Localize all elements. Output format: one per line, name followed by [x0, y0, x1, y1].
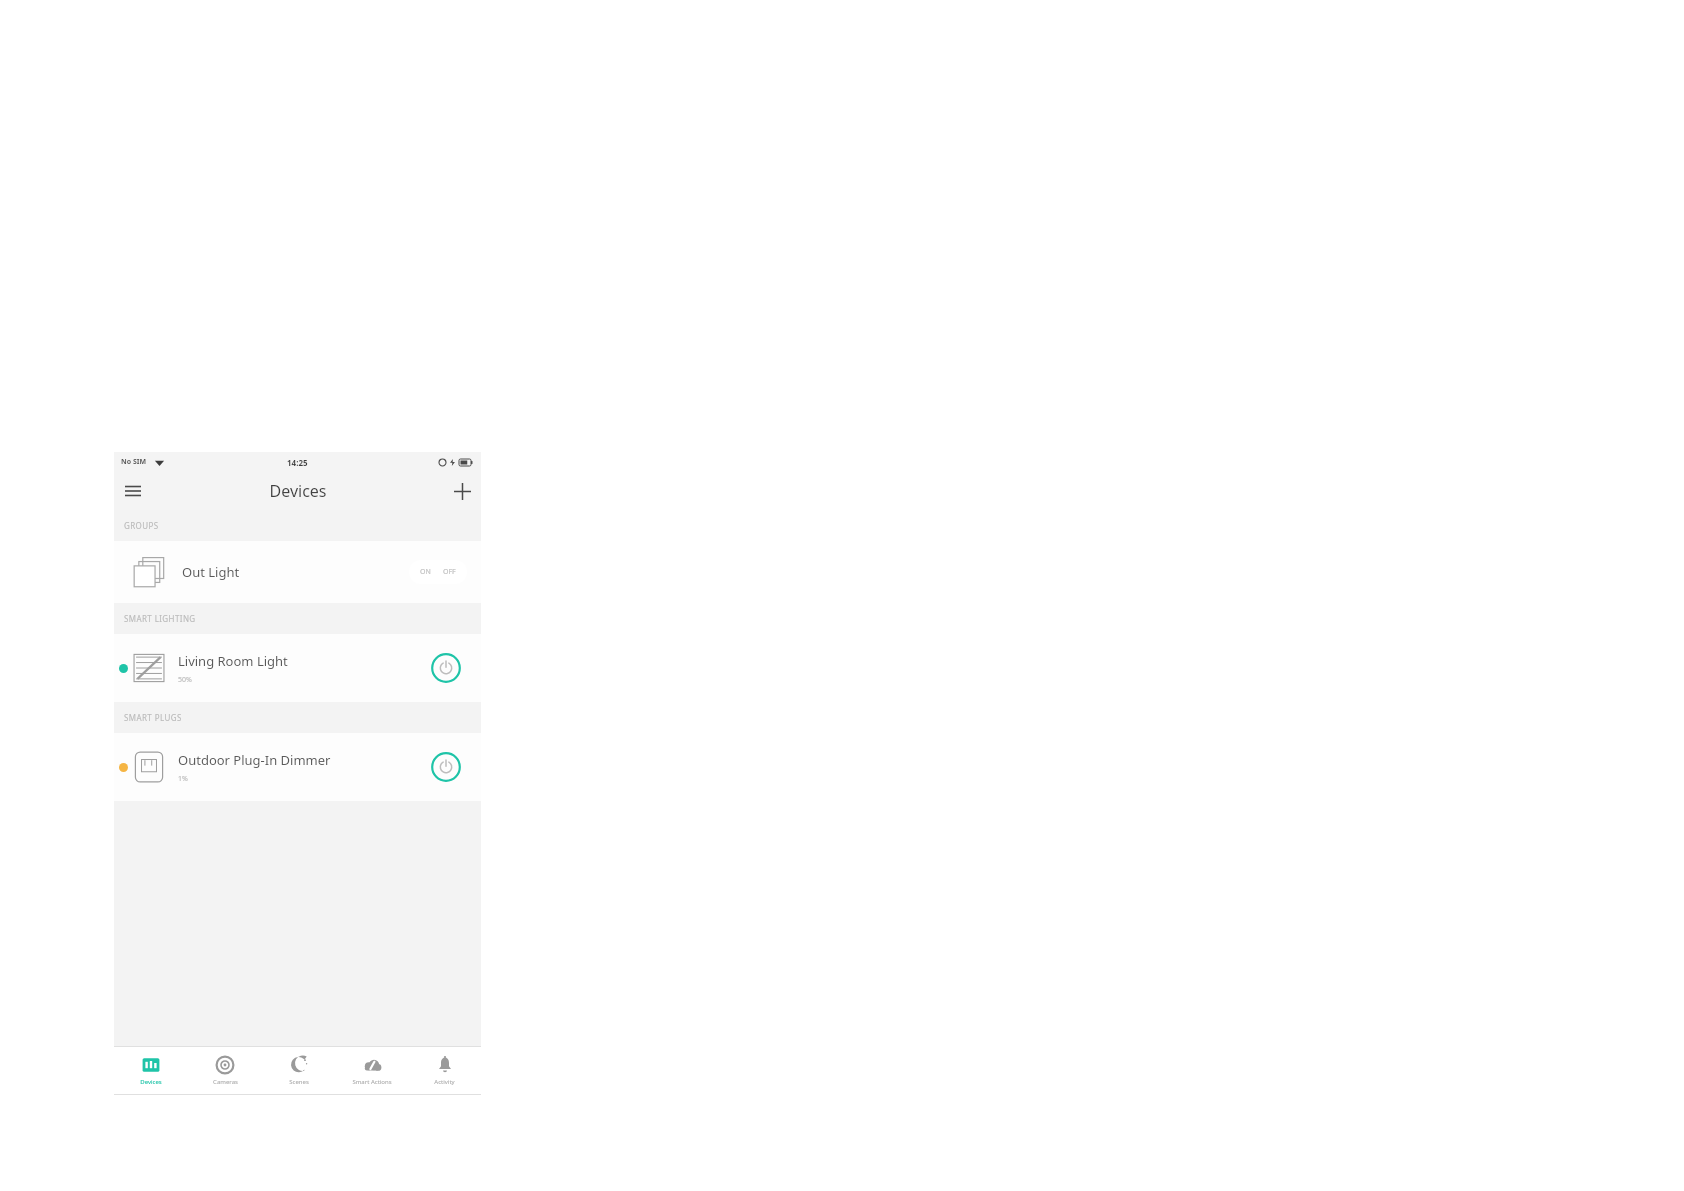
button[interactable]: Toggle power [427, 649, 465, 687]
staticText: Out Light [182, 563, 240, 581]
button[interactable]: Add device [443, 472, 481, 510]
staticText: Devices [269, 480, 327, 502]
staticText: 14:25 [287, 457, 308, 468]
staticText: Living Room Light [178, 652, 288, 670]
staticText: Activity [434, 1078, 455, 1086]
staticText: Scenes [289, 1078, 309, 1086]
staticText: No SIM [121, 457, 147, 467]
button[interactable]: Activity [408, 1055, 481, 1086]
button[interactable]: Smart Actions [335, 1055, 408, 1086]
staticText: ON [420, 567, 431, 577]
staticText: SMART PLUGS [124, 712, 182, 723]
staticText: Smart Actions [352, 1078, 392, 1086]
button[interactable]: Living Room Light [114, 634, 481, 702]
staticText: 50% [178, 675, 192, 685]
button[interactable]: Toggle power [427, 748, 465, 786]
staticText: GROUPS [124, 520, 159, 531]
button[interactable]: Menu [114, 472, 152, 510]
staticText: SMART LIGHTING [124, 613, 196, 624]
button[interactable]: Outdoor Plug-In Dimmer [114, 733, 481, 801]
button[interactable]: Out Light [114, 541, 481, 603]
staticText: OFF [443, 567, 456, 577]
button[interactable]: Devices [114, 1055, 188, 1086]
staticText: Outdoor Plug-In Dimmer [178, 751, 331, 769]
staticText: Cameras [213, 1078, 238, 1086]
button[interactable]: Cameras [188, 1055, 262, 1086]
button[interactable]: ON [409, 560, 467, 584]
staticText: Devices [140, 1078, 162, 1086]
staticText: 1% [178, 774, 188, 784]
button[interactable]: Scenes [262, 1055, 335, 1086]
